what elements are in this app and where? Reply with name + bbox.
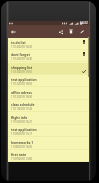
button[interactable]: test application — [8, 125, 89, 137]
staticText: 11/12/2018 18:50 — [11, 95, 33, 99]
button[interactable]: Back — [9, 25, 18, 38]
staticText: 11/14/2018 14:32 — [11, 45, 33, 49]
staticText: 11/12/2018 18:55 — [11, 82, 33, 86]
staticText: 11/07/2018 13:00 — [11, 157, 33, 161]
staticText: 11/09/2018 15:11 — [11, 132, 33, 136]
staticText: office adress — [11, 90, 32, 94]
button[interactable]: Share — [56, 25, 65, 38]
staticText: class schedule — [11, 102, 35, 106]
button[interactable]: office adress — [8, 88, 89, 100]
staticText: first note — [11, 152, 27, 156]
staticText: 11/08/2018 14:05 — [11, 145, 33, 149]
button[interactable]: homeworks 1 — [8, 138, 89, 150]
staticText: 14:32 — [80, 21, 88, 25]
button[interactable]: first note — [8, 150, 89, 162]
button[interactable]: Delete — [66, 25, 75, 38]
staticText: shopping list — [11, 65, 33, 69]
staticText: flight info — [11, 115, 28, 119]
staticText: 11/14/2018 14:30 — [11, 57, 33, 61]
staticText: 11/13/2018 19:01 — [11, 70, 33, 74]
staticText: 11/11/2018 17:42 — [11, 107, 33, 111]
staticText: 11/10/2018 16:21 — [11, 120, 33, 124]
button[interactable]: flight info — [8, 113, 89, 125]
button[interactable]: dont forget — [8, 50, 89, 62]
staticText: test application — [11, 127, 37, 131]
button[interactable]: shopping list — [8, 63, 89, 75]
staticText: homeworks 1 — [11, 140, 34, 144]
button[interactable]: test application — [8, 75, 89, 87]
staticText: to-do list — [11, 40, 26, 44]
staticText: test application — [11, 77, 37, 81]
button[interactable]: Edit — [77, 25, 86, 38]
button[interactable]: class schedule — [8, 100, 89, 112]
staticText: dont forget — [11, 52, 30, 56]
button[interactable]: to-do list — [8, 38, 89, 50]
